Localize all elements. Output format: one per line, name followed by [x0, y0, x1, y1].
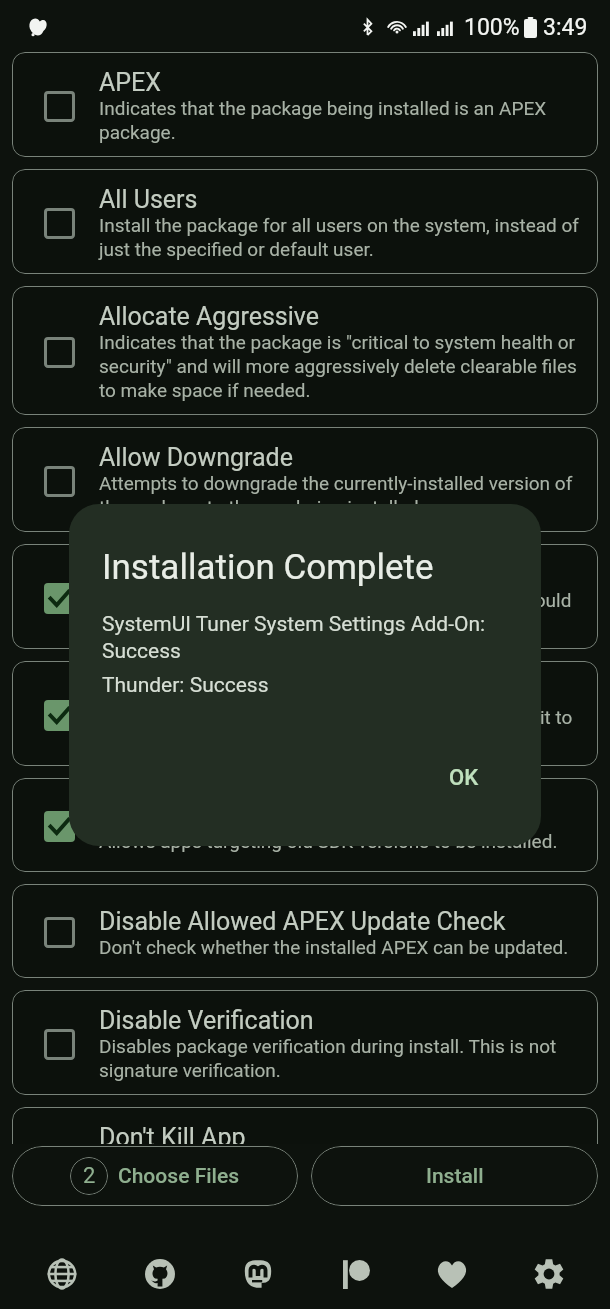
button[interactable]: Mastodon — [209, 1214, 306, 1309]
staticText: Allow Test — [99, 560, 215, 589]
button[interactable]: Patreon — [306, 1214, 403, 1309]
button[interactable]: Allocate Aggressive — [12, 286, 598, 415]
staticText: Attempts to downgrade the currently-inst… — [99, 472, 582, 519]
staticText: SystemUI Tuner System Settings Add-On: S… — [102, 612, 506, 663]
button[interactable]: Disable Verification — [12, 990, 598, 1095]
staticText: 3:49 — [543, 14, 588, 41]
staticText: Allocate Aggressive — [99, 302, 320, 331]
staticText: Marks the package as a test package, and… — [99, 706, 582, 753]
staticText: Don't Kill App — [99, 1123, 246, 1144]
staticText: Choose Files — [118, 1164, 240, 1189]
staticText: Allows apps targeting old SDK versions t… — [99, 830, 558, 852]
staticText: Install the package for all users on the… — [99, 214, 582, 261]
button[interactable]: Allow Test — [12, 544, 598, 649]
staticText: 100% — [464, 14, 520, 41]
button[interactable]: Disable Allowed APEX Update Check — [12, 884, 598, 978]
staticText: APEX — [99, 68, 161, 97]
staticText: Thunder: Success — [102, 673, 269, 698]
button[interactable]: GitHub — [111, 1214, 209, 1309]
button[interactable]: Settings — [500, 1214, 597, 1309]
staticText: 2 — [83, 1163, 96, 1189]
staticText: Disable Allowed APEX Update Check — [99, 907, 506, 936]
staticText: Allow Test Packages — [99, 677, 330, 706]
staticText: Install — [426, 1164, 484, 1189]
button[interactable]: Bypass Low Target SDK Block — [12, 778, 598, 872]
staticText: Allow Downgrade — [99, 443, 293, 472]
staticText: Indicates that the package being install… — [99, 97, 582, 144]
staticText: Indicates that the package is a test pac… — [99, 589, 582, 636]
staticText: All Users — [99, 185, 198, 214]
button[interactable]: Website — [13, 1214, 111, 1309]
button[interactable]: Don't Kill App — [12, 1107, 598, 1144]
staticText: Installation Complete — [102, 547, 434, 588]
button[interactable]: Install — [311, 1146, 598, 1206]
staticText: Indicates that the package is "critical … — [99, 331, 582, 402]
button[interactable]: Allow Downgrade — [12, 427, 598, 532]
staticText: Don't check whether the installed APEX c… — [99, 936, 569, 958]
button[interactable]: APEX — [12, 52, 598, 157]
button[interactable]: Support — [403, 1214, 500, 1309]
button[interactable]: Allow Test Packages — [12, 661, 598, 766]
button[interactable]: 2 — [12, 1146, 298, 1206]
staticText: Disables package verification during ins… — [99, 1035, 582, 1082]
button[interactable]: OK — [435, 759, 493, 797]
staticText: Disable Verification — [99, 1006, 314, 1035]
staticText: OK — [449, 765, 479, 791]
button[interactable]: All Users — [12, 169, 598, 274]
